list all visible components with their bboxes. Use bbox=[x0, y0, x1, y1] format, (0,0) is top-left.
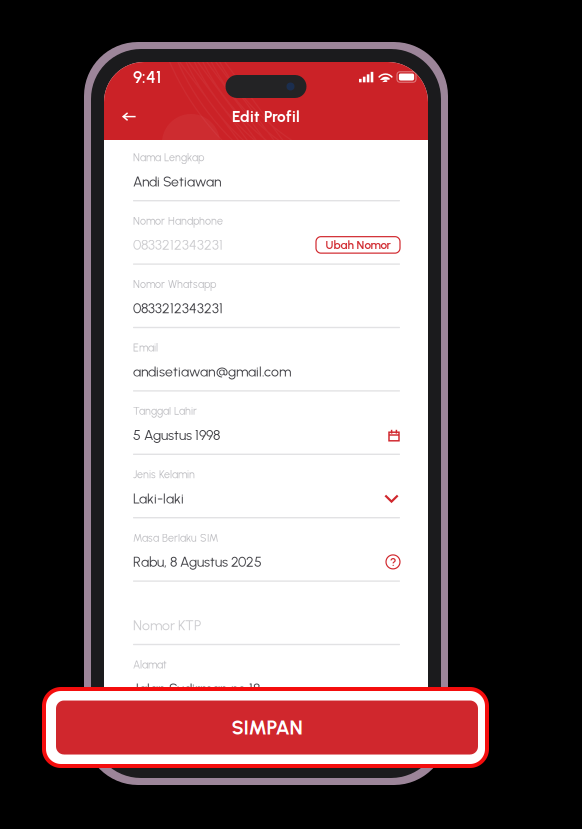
staticText: Masa Berlaku SIM bbox=[133, 531, 218, 544]
button[interactable]: Pilih jenis kelamin bbox=[384, 494, 400, 503]
staticText: Andi Setiawan bbox=[133, 173, 222, 190]
staticText: Jenis Kelamin bbox=[133, 468, 195, 481]
button[interactable]: Pilih tanggal lahir bbox=[388, 429, 400, 442]
staticText: 0833212343231 bbox=[133, 300, 223, 317]
staticText: Email bbox=[133, 341, 158, 354]
staticText: Jalan Sudirman no 18 bbox=[133, 680, 260, 697]
button[interactable]: Ubah Nomor bbox=[316, 237, 400, 253]
staticText: andisetiawan@gmail.com bbox=[133, 363, 291, 380]
staticText: Nomor Handphone bbox=[133, 214, 223, 227]
staticText: Nomor KTP bbox=[133, 617, 201, 634]
staticText: 5 Agustus 1998 bbox=[133, 427, 220, 443]
staticText: Laki-laki bbox=[133, 490, 184, 507]
staticText: Alamat bbox=[133, 658, 167, 671]
staticText: Rabu, 8 Agustus 2025 bbox=[133, 553, 262, 570]
staticText: 9:41 bbox=[133, 67, 161, 87]
staticText: Edit Profil bbox=[232, 107, 300, 126]
staticText: ? bbox=[390, 555, 396, 569]
staticText: Ubah Nomor bbox=[325, 238, 390, 252]
button[interactable]: Informasi masa berlaku SIM bbox=[386, 555, 400, 569]
staticText: Tanggal Lahir bbox=[133, 405, 197, 417]
button[interactable]: SIMPAN bbox=[54, 700, 476, 754]
staticText: Nomor Whatsapp bbox=[133, 278, 216, 291]
staticText: 0833212343231 bbox=[133, 236, 223, 253]
button[interactable]: Kembali bbox=[114, 104, 144, 129]
staticText: SIMPAN bbox=[231, 716, 302, 739]
staticText: Nama Lengkap bbox=[133, 151, 204, 164]
